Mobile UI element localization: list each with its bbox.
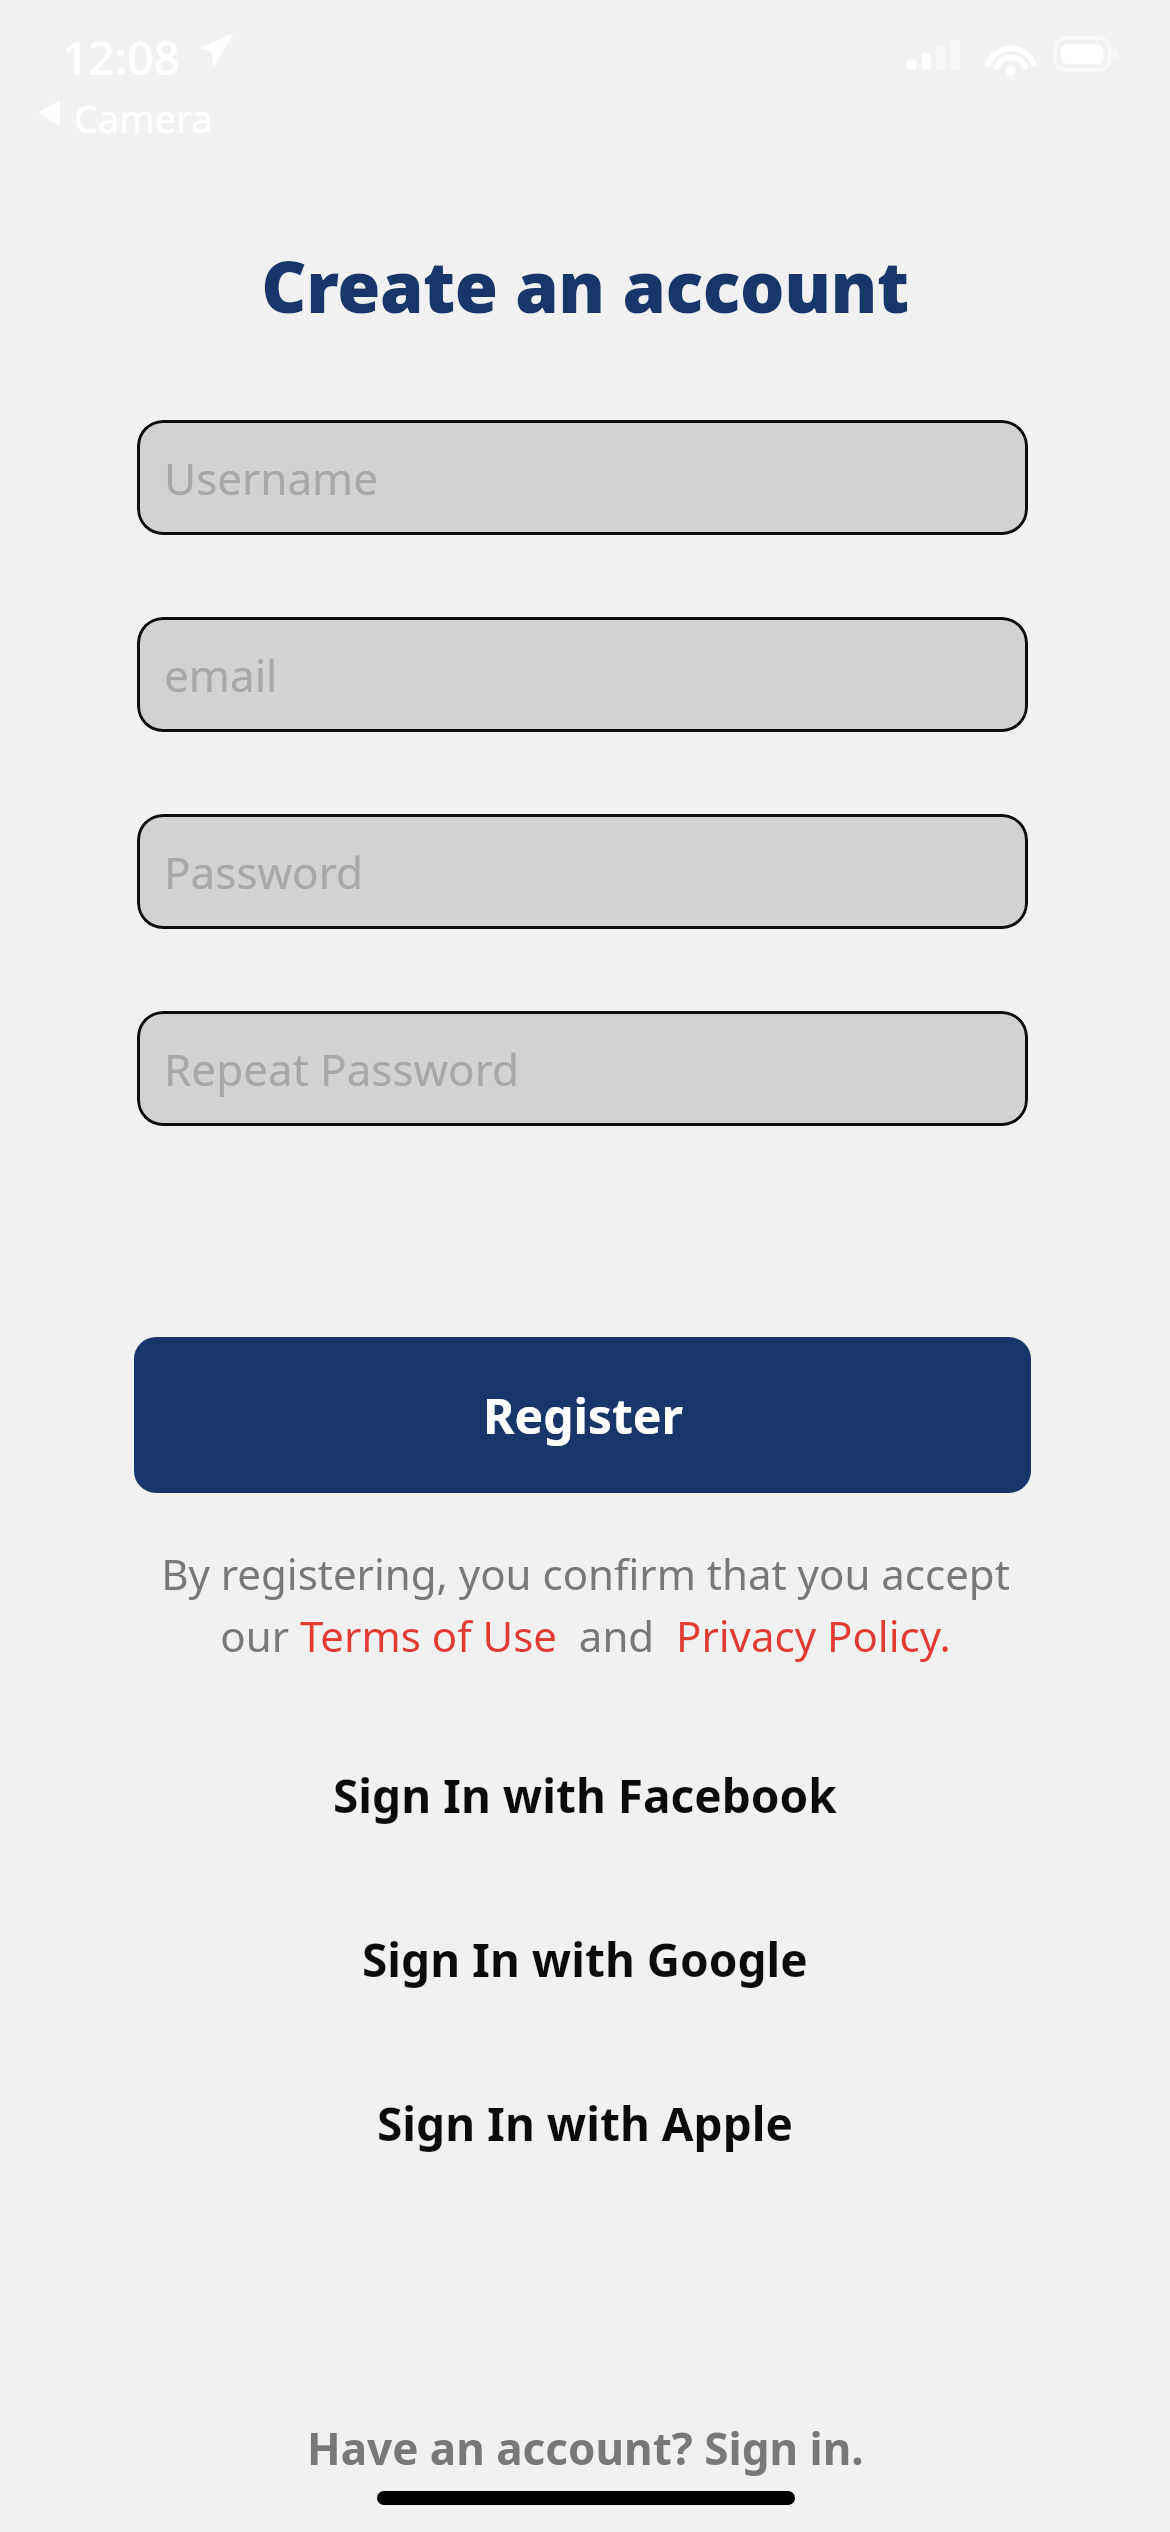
staticText: Sign In with Google [362,1928,808,1991]
staticText: Register [483,1383,683,1448]
button[interactable]: By registering, you confirm that you acc… [120,1545,1050,1664]
staticText: By registering, you confirm that you acc… [161,1545,1010,1664]
staticText: 12:08 [62,26,180,89]
staticText: Camera [74,92,213,144]
button[interactable]: Password [137,814,1028,929]
staticText: Repeat Password [164,1039,520,1099]
staticText: Sign In with Facebook [333,1764,837,1827]
staticText: Password [164,842,364,902]
staticText: Create an account [0,238,1170,333]
button[interactable]: Sign In with Google [0,1918,1170,2000]
staticText: Username [164,448,379,508]
button[interactable]: Sign In with Facebook [0,1754,1170,1836]
button[interactable]: Sign In with Apple [0,2082,1170,2164]
button[interactable]: Have an account? Sign in. [0,2410,1170,2486]
staticText: email [164,645,278,705]
button[interactable]: email [137,617,1028,732]
button[interactable]: Username [137,420,1028,535]
button[interactable]: Back to Camera [30,88,185,148]
staticText: Sign In with Apple [377,2092,793,2155]
button[interactable]: Register [134,1337,1031,1493]
button[interactable]: Repeat Password [137,1011,1028,1126]
staticText: Have an account? Sign in. [307,2418,864,2478]
